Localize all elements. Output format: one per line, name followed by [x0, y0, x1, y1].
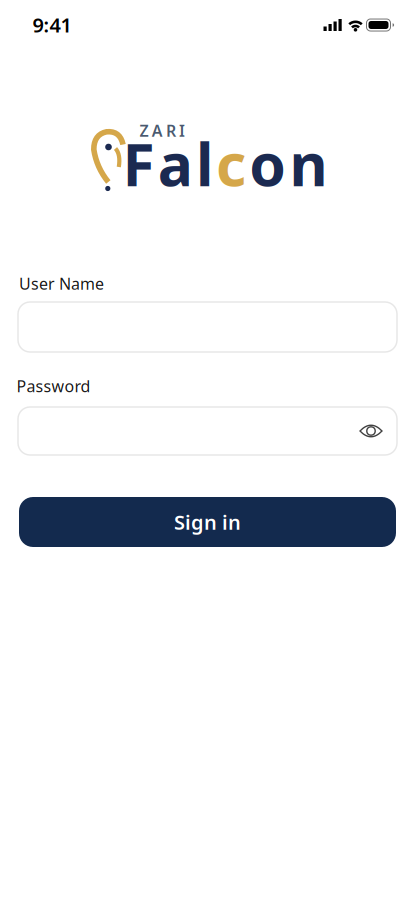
staticText: c — [216, 124, 246, 202]
staticText: Password — [16, 375, 90, 397]
staticText: l — [196, 124, 213, 202]
staticText: o — [249, 124, 286, 202]
staticText: Sign in — [174, 509, 241, 535]
staticText: 9:41 — [32, 11, 71, 38]
staticText: Z — [139, 120, 148, 141]
staticText: R — [166, 120, 176, 141]
button[interactable] — [18, 407, 397, 455]
staticText: User Name — [19, 273, 104, 294]
staticText: n — [289, 124, 327, 202]
button[interactable] — [18, 302, 397, 352]
staticText: a — [158, 124, 193, 202]
button[interactable] — [358, 418, 384, 444]
button[interactable]: Sign in — [19, 497, 396, 547]
staticText: A — [152, 120, 163, 141]
staticText: I — [179, 120, 185, 141]
staticText: F — [122, 124, 154, 202]
